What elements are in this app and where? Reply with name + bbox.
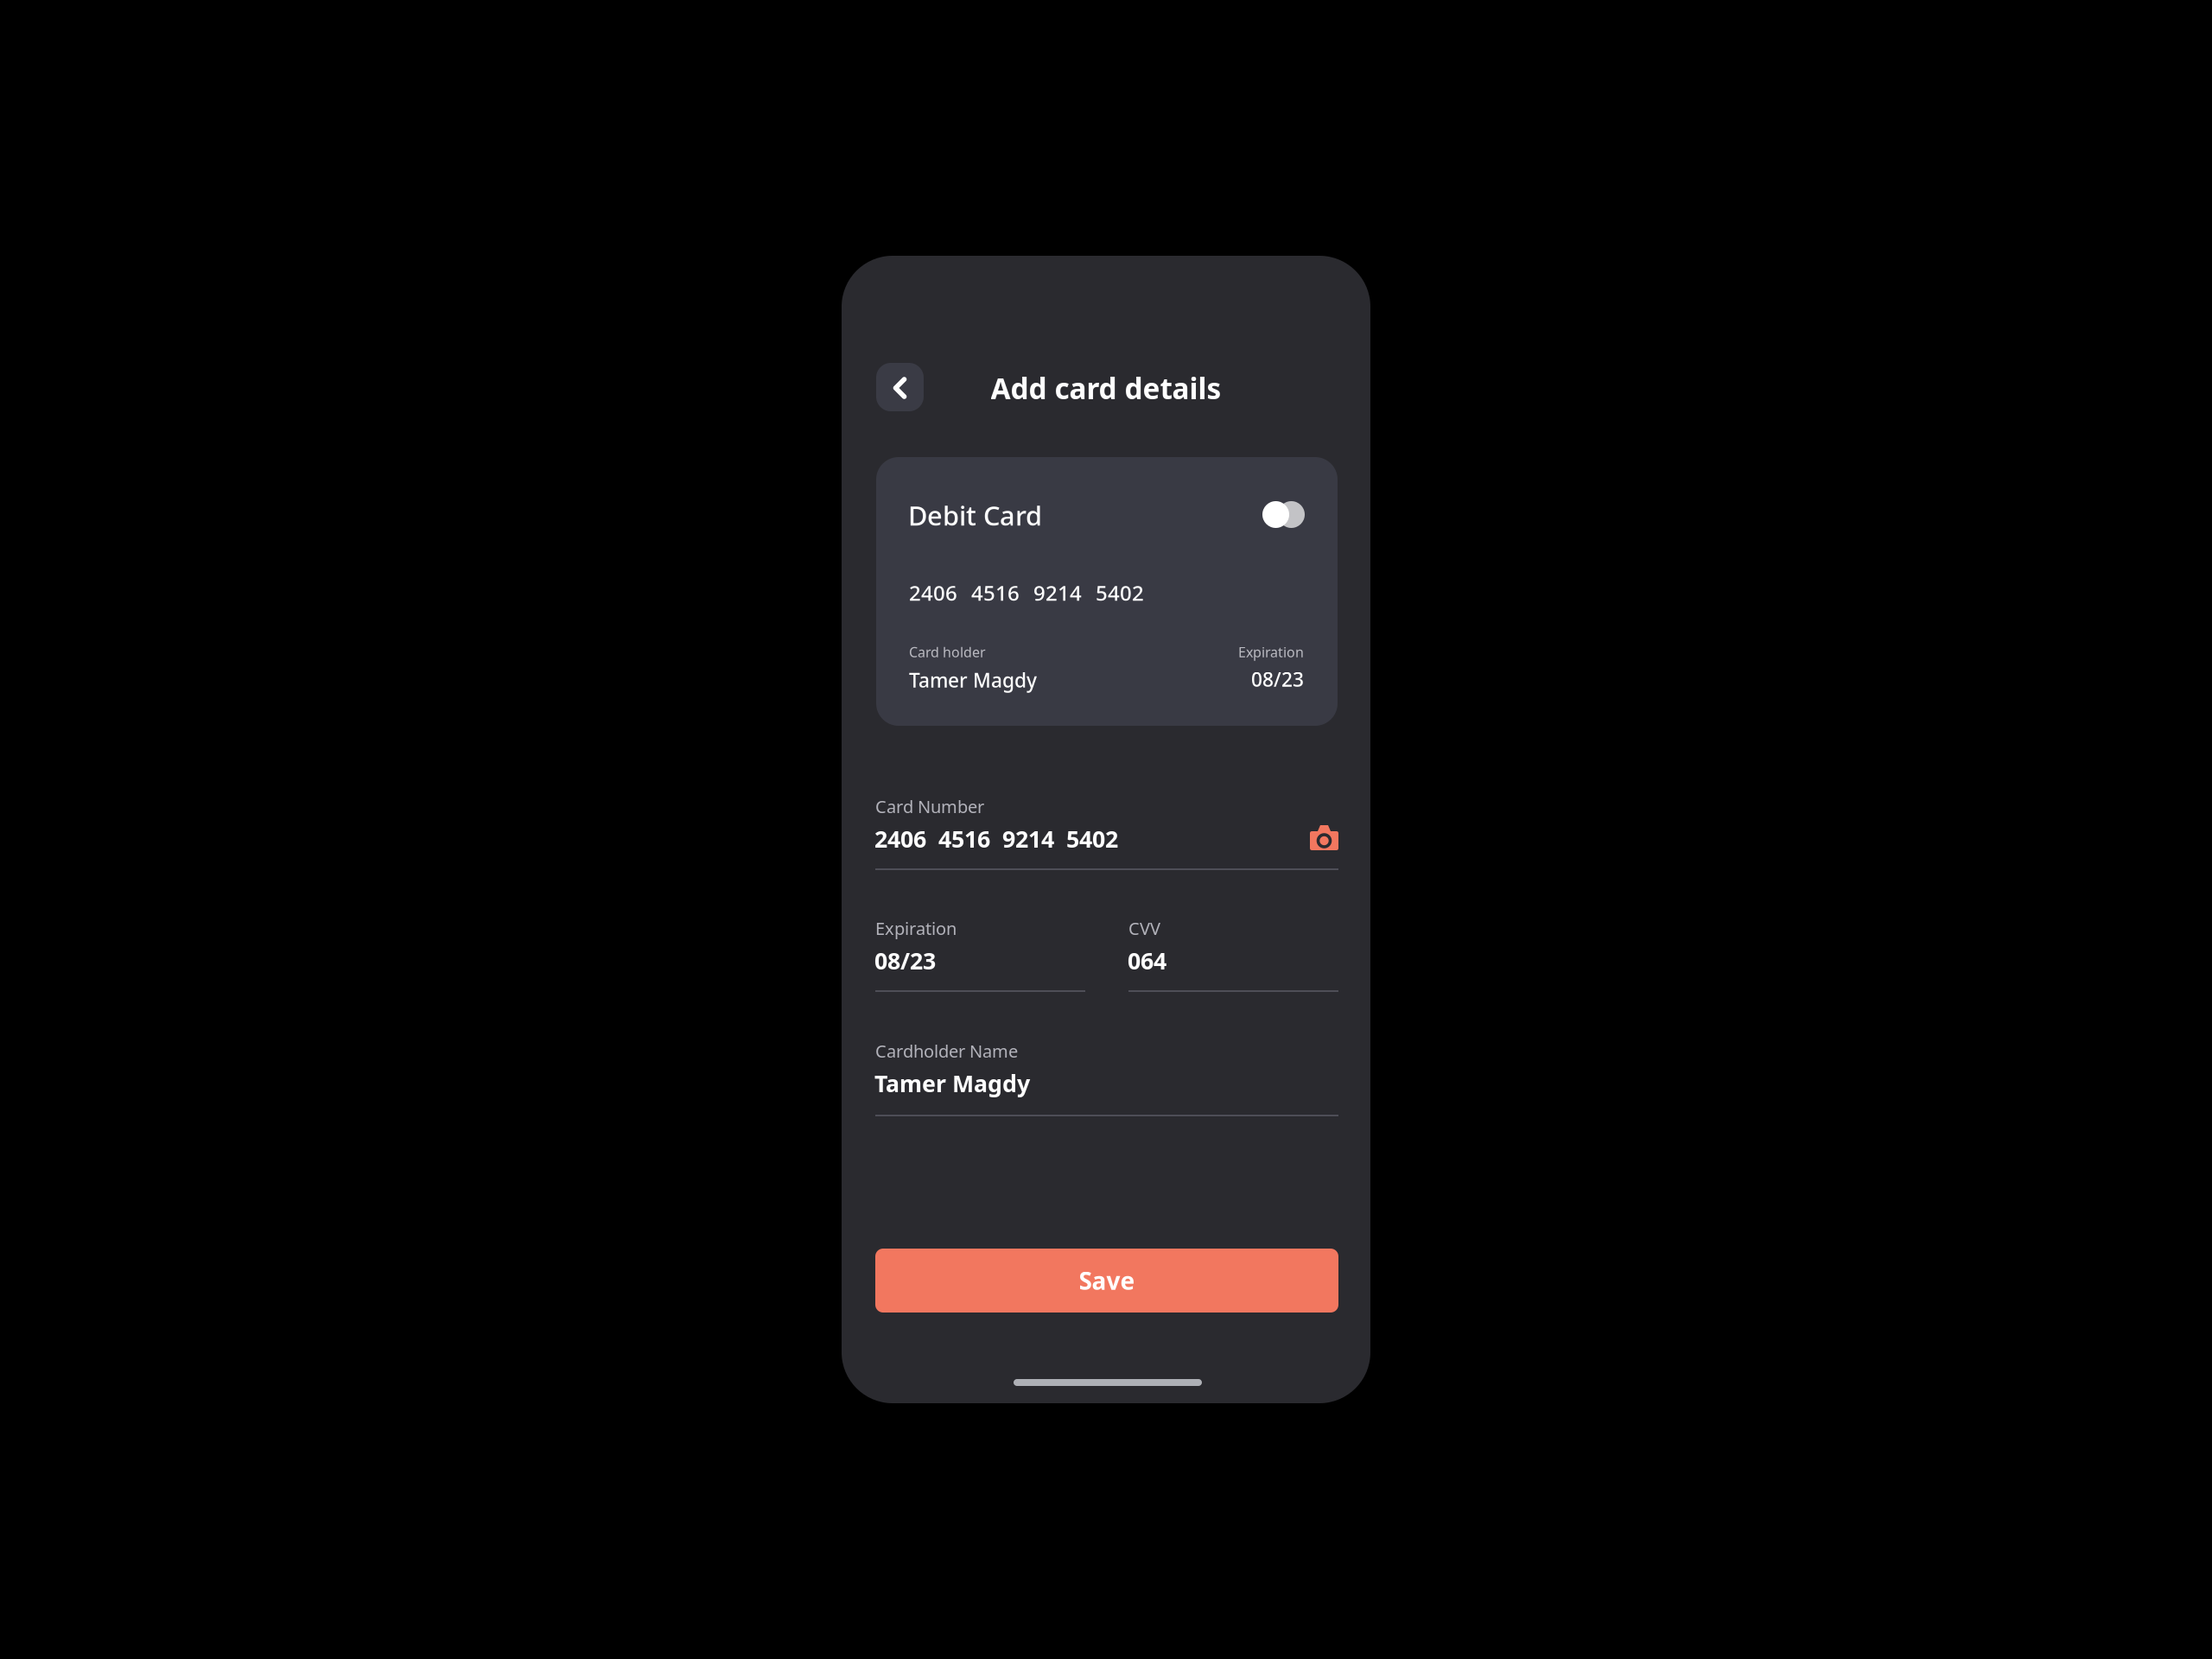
- staticText: Tamer Magdy: [874, 1068, 1030, 1099]
- button[interactable]: Cardholder Name: [875, 1039, 1338, 1116]
- staticText: Expiration: [1238, 643, 1304, 661]
- staticText: 08/23: [1251, 666, 1304, 692]
- staticText: 2406 4516 9214 5402: [874, 823, 1118, 854]
- staticText: 9214: [1033, 579, 1082, 606]
- staticText: Expiration: [875, 917, 957, 940]
- staticText: Debit Card: [908, 498, 1042, 533]
- button[interactable]: Back: [876, 363, 924, 411]
- staticText: Save: [1079, 1264, 1135, 1297]
- button[interactable]: CVV: [1128, 917, 1338, 992]
- staticText: 08/23: [874, 945, 936, 976]
- button[interactable]: Scan card with camera: [1310, 825, 1338, 850]
- button[interactable]: Expiration: [875, 917, 1085, 992]
- staticText: Card holder: [909, 643, 986, 661]
- staticText: 5402: [1096, 579, 1144, 606]
- staticText: Tamer Magdy: [909, 667, 1037, 693]
- button[interactable]: Card Number: [875, 795, 1338, 870]
- staticText: CVV: [1128, 917, 1160, 940]
- staticText: 4516: [971, 579, 1020, 606]
- staticText: Add card details: [991, 369, 1221, 407]
- staticText: Card Number: [875, 795, 984, 818]
- staticText: 064: [1128, 945, 1166, 976]
- staticText: 2406: [909, 579, 957, 606]
- button[interactable]: Save: [875, 1249, 1338, 1313]
- staticText: Cardholder Name: [875, 1039, 1018, 1062]
